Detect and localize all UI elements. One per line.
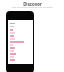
staticText: Discover bbox=[23, 1, 42, 7]
staticText: Apps and games picked just for you today bbox=[11, 6, 53, 9]
